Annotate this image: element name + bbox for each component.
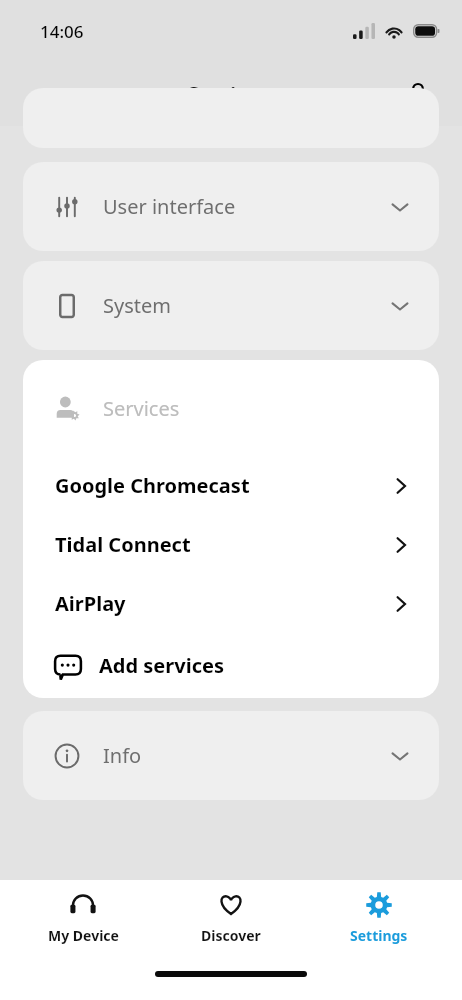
staticText: Settings (350, 926, 408, 945)
button[interactable]: User interface (23, 162, 439, 251)
button[interactable]: Settings (314, 880, 444, 955)
button[interactable]: Account (396, 72, 440, 116)
staticText: Discover (201, 926, 261, 945)
staticText: User interface (103, 193, 236, 220)
button[interactable]: My Device (18, 880, 148, 955)
staticText: My Device (48, 926, 119, 945)
staticText: Info (103, 742, 142, 769)
staticText: 14:06 (40, 20, 84, 43)
staticText: System (103, 292, 171, 319)
staticText: Settings (187, 79, 275, 109)
button[interactable]: Discover (166, 880, 296, 955)
button[interactable]: AirPlay (23, 574, 439, 633)
button[interactable]: Tidal Connect (23, 515, 439, 574)
button[interactable]: System (23, 261, 439, 350)
button[interactable]: Info (23, 711, 439, 800)
button[interactable]: Google Chromecast (23, 456, 439, 515)
staticText: Add services (99, 652, 224, 679)
button[interactable]: Add services (23, 633, 439, 698)
staticText: Services (103, 395, 180, 422)
staticText: Google Chromecast (55, 472, 250, 499)
staticText: AirPlay (55, 590, 126, 617)
button[interactable]: Services (23, 360, 439, 456)
staticText: Tidal Connect (55, 531, 191, 558)
